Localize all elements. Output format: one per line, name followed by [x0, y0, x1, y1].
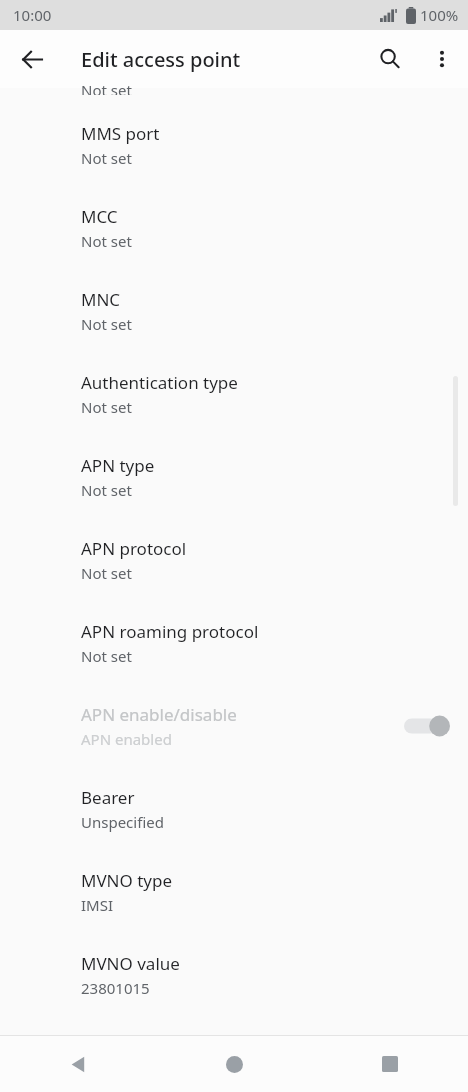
button[interactable]: MNC: [0, 269, 468, 352]
staticText: MVNO value: [81, 952, 180, 975]
button[interactable]: Back: [6, 33, 58, 85]
staticText: 10:00: [13, 5, 52, 25]
staticText: Not set: [81, 563, 132, 583]
button[interactable]: MMS port: [0, 103, 468, 186]
button[interactable]: More options: [416, 33, 468, 85]
staticText: MMS port: [81, 122, 160, 145]
staticText: 100%: [420, 5, 459, 25]
button[interactable]: APN enable/disable: [0, 684, 468, 767]
button[interactable]: Back: [0, 1036, 156, 1092]
staticText: MNC: [81, 288, 121, 311]
button[interactable]: Bearer: [0, 767, 468, 850]
staticText: IMSI: [81, 895, 114, 915]
button[interactable]: MVNO value: [0, 933, 468, 1016]
staticText: APN type: [81, 454, 155, 477]
staticText: Edit access point: [81, 46, 241, 73]
button[interactable]: MVNO type: [0, 850, 468, 933]
staticText: APN roaming protocol: [81, 620, 259, 643]
button[interactable]: APN roaming protocol: [0, 601, 468, 684]
staticText: MCC: [81, 205, 118, 228]
staticText: MVNO type: [81, 869, 173, 892]
staticText: 23801015: [81, 978, 150, 998]
staticText: APN enabled: [81, 729, 172, 749]
staticText: Not set: [81, 80, 132, 95]
button[interactable]: Home: [156, 1036, 312, 1092]
staticText: Authentication type: [81, 371, 238, 394]
button[interactable]: APN protocol: [0, 518, 468, 601]
button[interactable]: Not set: [0, 88, 468, 103]
staticText: Not set: [81, 397, 132, 417]
staticText: APN protocol: [81, 537, 187, 560]
button[interactable]: Search: [364, 33, 416, 85]
button[interactable]: MCC: [0, 186, 468, 269]
staticText: Bearer: [81, 786, 135, 809]
staticText: Not set: [81, 314, 132, 334]
staticText: APN enable/disable: [81, 703, 237, 726]
button[interactable]: Authentication type: [0, 352, 468, 435]
staticText: Not set: [81, 646, 132, 666]
staticText: Not set: [81, 480, 132, 500]
staticText: Unspecified: [81, 812, 164, 832]
staticText: Not set: [81, 231, 132, 251]
staticText: Not set: [81, 148, 132, 168]
button[interactable]: APN type: [0, 435, 468, 518]
button[interactable]: Recent apps: [312, 1036, 468, 1092]
